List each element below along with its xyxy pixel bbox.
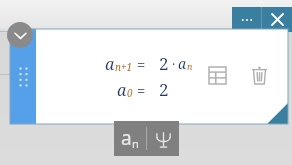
button[interactable]: Close [262,7,292,32]
button[interactable]: Delete [244,60,274,90]
button[interactable]: Collapse [7,22,33,48]
staticText: a [117,79,127,101]
staticText: = [137,54,146,74]
staticText: n [187,60,193,72]
staticText: = [137,80,146,100]
staticText: 2 [159,78,169,101]
button[interactable]: Resize [266,102,288,124]
button[interactable]: a [71,52,193,101]
staticText: 0 [127,86,133,100]
staticText: n+1 [115,60,133,74]
button[interactable]: Drag handle [10,29,36,124]
button[interactable]: Sequence variable [114,121,146,156]
staticText: · [172,55,176,73]
button[interactable]: Table [202,60,232,90]
staticText: 2 [159,52,169,75]
staticText: a [105,53,115,75]
button[interactable]: More options [232,7,261,32]
button[interactable]: Psi function [147,121,179,156]
staticText: n [132,136,139,151]
staticText: a [178,54,187,73]
staticText: a [121,125,132,151]
